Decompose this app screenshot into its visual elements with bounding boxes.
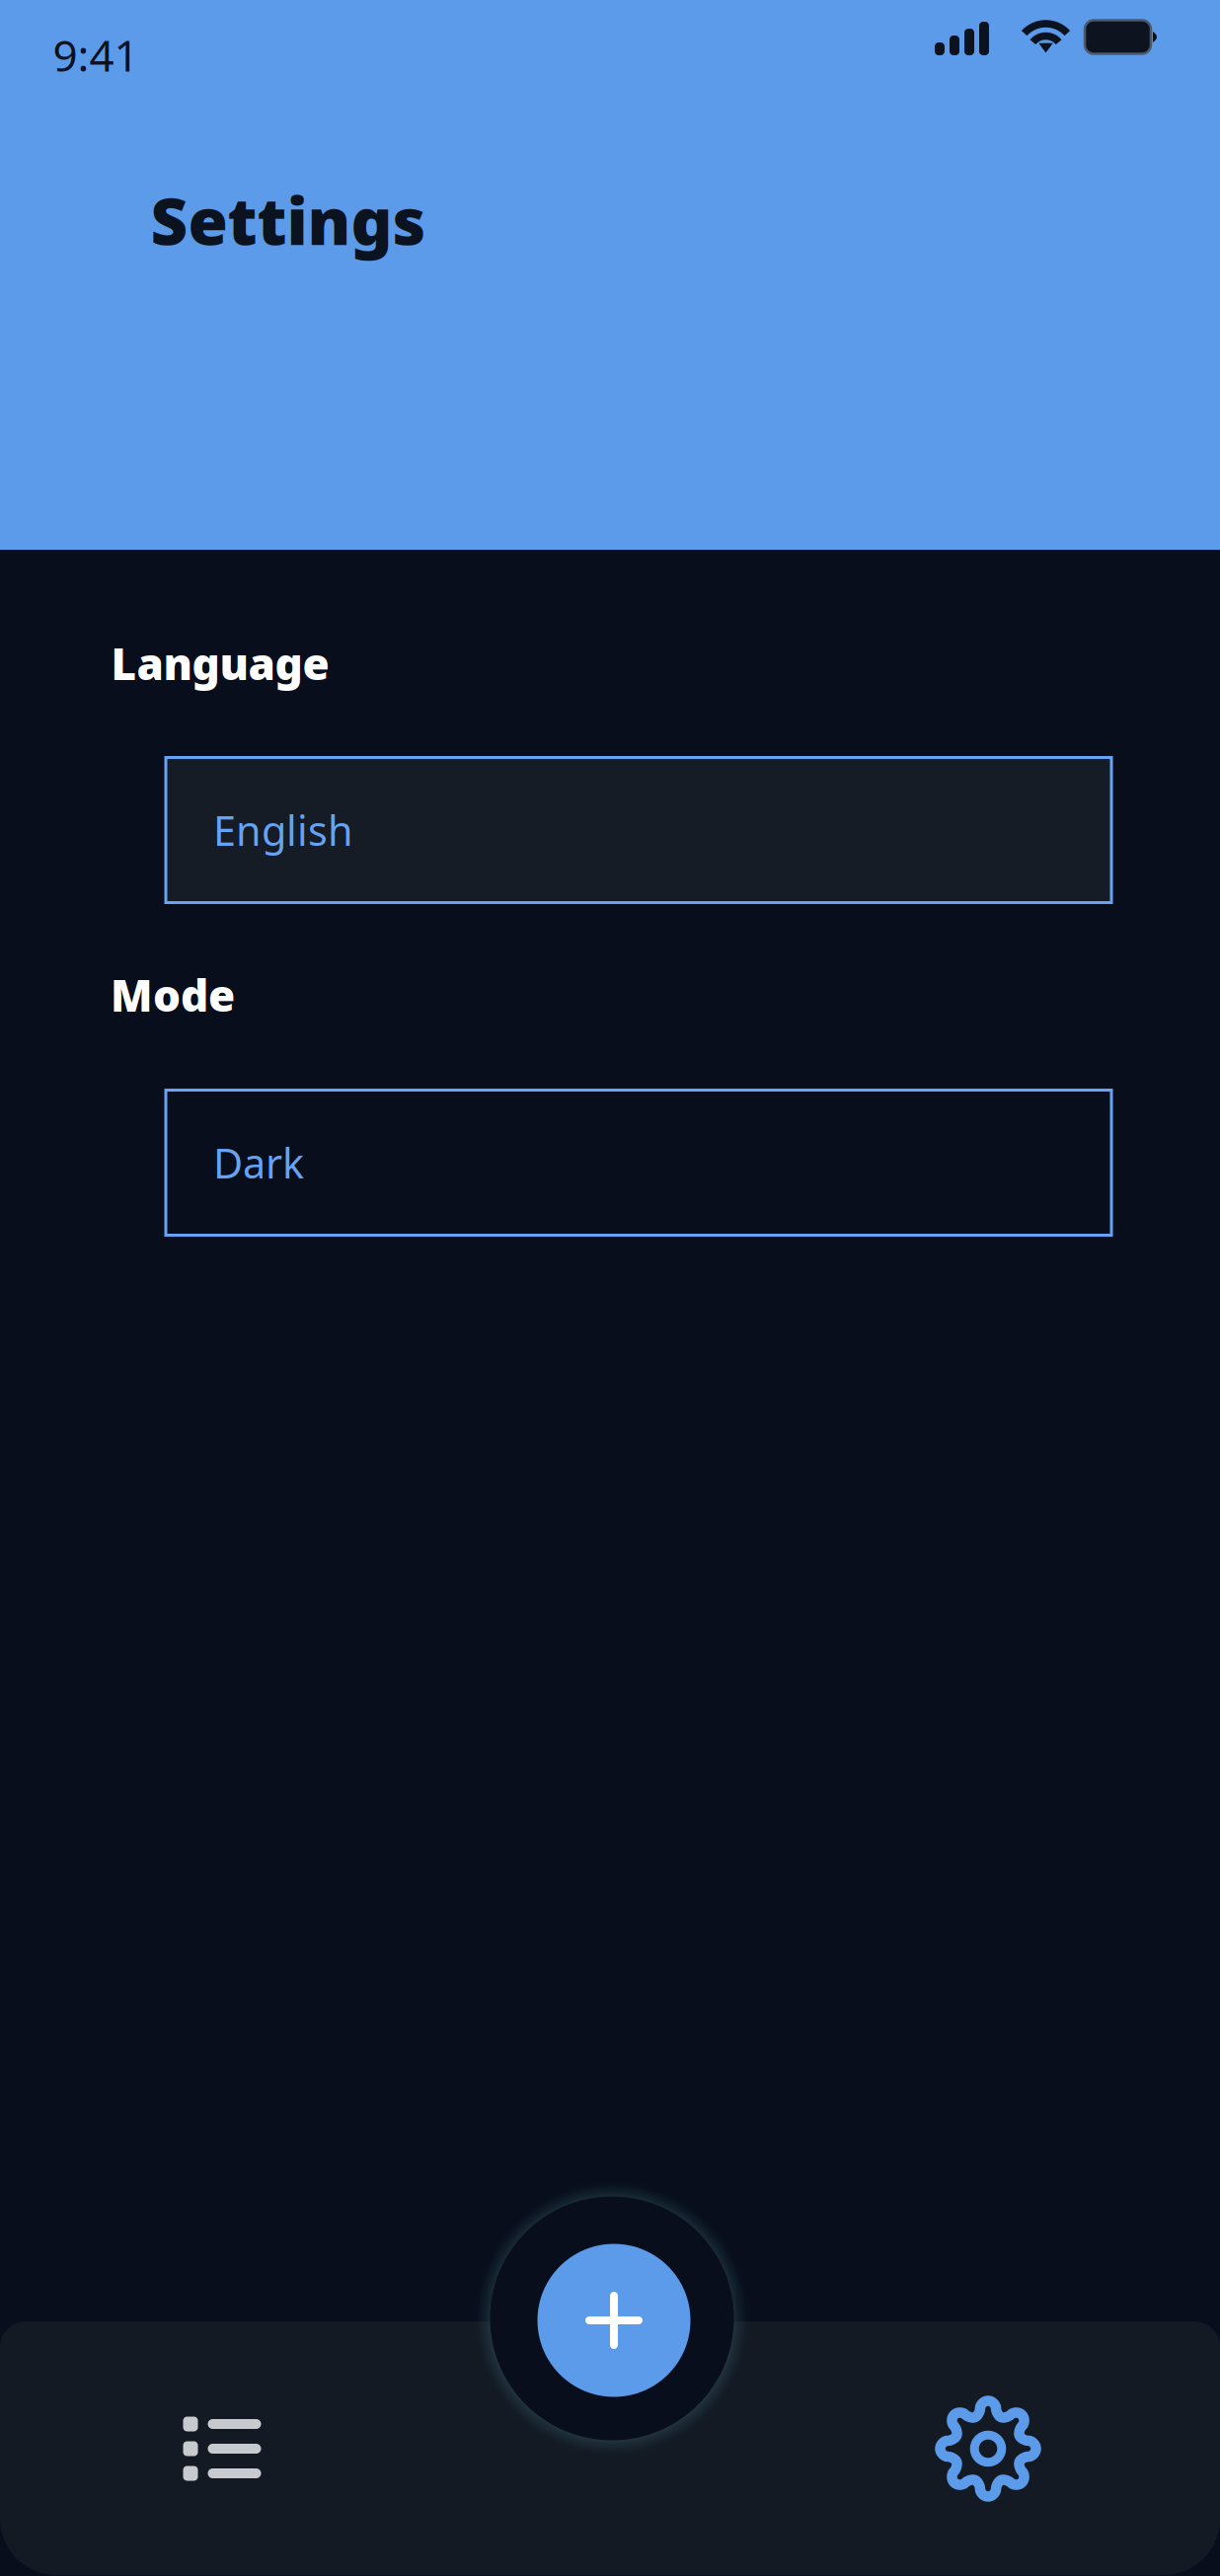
- button[interactable]: Settings: [935, 2396, 1041, 2501]
- button[interactable]: Items list: [183, 2417, 261, 2480]
- staticText: Dark: [213, 1136, 304, 1190]
- button[interactable]: English: [166, 758, 1111, 903]
- staticText: Settings: [151, 177, 426, 263]
- staticText: English: [213, 803, 353, 857]
- button[interactable]: Add: [537, 2244, 690, 2397]
- staticText: 9:41: [53, 26, 139, 84]
- button[interactable]: Dark: [166, 1090, 1111, 1235]
- staticText: Language: [111, 634, 329, 692]
- staticText: Mode: [111, 966, 235, 1024]
